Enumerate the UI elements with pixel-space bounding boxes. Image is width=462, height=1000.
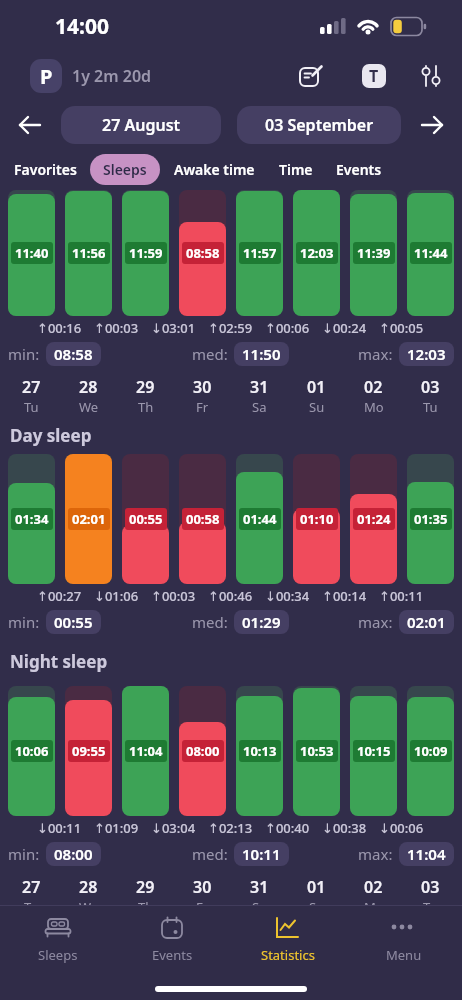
staticText: 10:09 <box>414 742 448 760</box>
button[interactable]: Sleeps <box>0 906 115 964</box>
staticText: med: <box>192 844 228 864</box>
staticText: max: <box>358 844 393 864</box>
staticText: ↓03:04 <box>151 819 196 837</box>
staticText: 03 <box>421 376 440 398</box>
button[interactable] <box>416 61 446 91</box>
staticText: med: <box>192 612 228 632</box>
staticText: min: <box>8 612 40 632</box>
staticText: max: <box>358 612 393 632</box>
staticText: ↑00:14 <box>322 587 367 605</box>
staticText: ↑00:46 <box>208 587 253 605</box>
staticText: 11:59 <box>129 244 163 262</box>
button[interactable]: 27 August <box>61 106 221 144</box>
staticText: Th <box>138 398 154 416</box>
button[interactable]: Favorites <box>14 160 77 179</box>
staticText: Fr <box>196 398 209 416</box>
staticText: 08:00 <box>186 742 220 760</box>
staticText: 08:58 <box>186 244 220 262</box>
staticText: We <box>79 898 99 916</box>
staticText: Mo <box>364 898 384 916</box>
staticText: 08:00 <box>54 844 93 864</box>
staticText: min: <box>8 844 40 864</box>
staticText: ↓00:38 <box>322 819 367 837</box>
staticText: ↑00:40 <box>265 819 310 837</box>
staticText: 00:55 <box>54 612 93 632</box>
button[interactable]: Menu <box>346 906 462 964</box>
staticText: 27 <box>22 376 41 398</box>
button[interactable] <box>16 113 44 137</box>
staticText: 10:15 <box>357 742 391 760</box>
staticText: 14:00 <box>55 12 109 41</box>
staticText: Th <box>138 898 154 916</box>
staticText: Sa <box>252 398 267 416</box>
staticText: 01 <box>307 376 326 398</box>
staticText: We <box>79 398 99 416</box>
staticText: ↑02:59 <box>208 319 253 337</box>
staticText: ↓00:34 <box>265 587 310 605</box>
staticText: 01 <box>307 876 326 898</box>
staticText: 29 <box>136 876 155 898</box>
button[interactable] <box>418 113 446 137</box>
staticText: 29 <box>136 376 155 398</box>
staticText: 10:13 <box>243 742 277 760</box>
staticText: 11:40 <box>15 244 49 262</box>
staticText: Tu <box>423 898 438 916</box>
staticText: ↑00:03 <box>151 587 196 605</box>
staticText: 02:01 <box>407 612 446 632</box>
staticText: 27 August <box>102 114 181 136</box>
staticText: 01:24 <box>357 510 391 528</box>
staticText: 1y 2m 20d <box>72 65 152 87</box>
staticText: med: <box>192 344 228 364</box>
button[interactable] <box>296 61 326 91</box>
staticText: 10:11 <box>242 844 281 864</box>
staticText: 11:50 <box>242 344 281 364</box>
button[interactable]: Time <box>279 160 313 179</box>
staticText: ↑00:11 <box>379 587 424 605</box>
staticText: 01:34 <box>15 510 49 528</box>
button[interactable]: 03 September <box>237 106 401 144</box>
staticText: 28 <box>79 376 98 398</box>
staticText: Tu <box>423 398 438 416</box>
staticText: Tu <box>24 398 39 416</box>
staticText: 02:01 <box>72 510 106 528</box>
staticText: 12:03 <box>407 344 446 364</box>
button[interactable]: Events <box>336 160 382 179</box>
staticText: ↓00:11 <box>37 819 82 837</box>
staticText: 02 <box>364 876 383 898</box>
staticText: ↑00:27 <box>37 587 82 605</box>
staticText: ↓00:24 <box>322 319 367 337</box>
staticText: ↓00:06 <box>379 819 424 837</box>
staticText: Sleeps <box>103 160 147 179</box>
staticText: 31 <box>250 876 269 898</box>
staticText: 01:35 <box>414 510 448 528</box>
staticText: Day sleep <box>10 424 92 447</box>
staticText: ↓01:06 <box>94 587 139 605</box>
staticText: ↑00:16 <box>37 319 82 337</box>
staticText: Su <box>309 398 325 416</box>
staticText: 02 <box>364 376 383 398</box>
button[interactable]: T <box>362 64 386 88</box>
staticText: 28 <box>79 876 98 898</box>
button[interactable]: Sleeps <box>90 154 160 185</box>
staticText: min: <box>8 344 40 364</box>
staticText: Statistics <box>261 946 315 964</box>
staticText: Mo <box>364 398 384 416</box>
staticText: 01:29 <box>242 612 281 632</box>
button[interactable]: P <box>30 59 62 93</box>
button[interactable]: Awake time <box>174 160 255 179</box>
staticText: 12:03 <box>300 244 334 262</box>
staticText: ↑02:13 <box>208 819 253 837</box>
staticText: 11:39 <box>357 244 391 262</box>
staticText: ↑00:03 <box>94 319 139 337</box>
staticText: Sa <box>252 898 267 916</box>
staticText: 31 <box>250 376 269 398</box>
staticText: max: <box>358 344 393 364</box>
staticText: ↑01:09 <box>94 819 139 837</box>
staticText: 03 September <box>265 114 374 136</box>
staticText: 11:44 <box>414 244 448 262</box>
staticText: 11:04 <box>129 742 163 760</box>
staticText: Su <box>309 898 325 916</box>
staticText: Night sleep <box>10 650 108 673</box>
button[interactable]: Events <box>115 906 230 964</box>
button[interactable]: Statistics <box>230 906 346 964</box>
